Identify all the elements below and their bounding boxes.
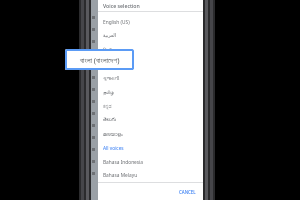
button[interactable]: English (US) <box>98 15 203 29</box>
staticText: العربية <box>103 33 117 39</box>
button[interactable]: ಕನ್ನಡ <box>98 99 203 113</box>
staticText: All voices <box>103 145 124 152</box>
staticText: ಕನ್ನಡ <box>103 104 112 109</box>
button[interactable]: All voices <box>98 141 203 155</box>
staticText: CANCEL <box>179 189 196 195</box>
staticText: English (US) <box>103 19 130 26</box>
staticText: தமிழ் <box>103 90 114 95</box>
staticText: മലയാളം <box>103 132 123 137</box>
staticText: हिन्दी <box>103 47 113 54</box>
staticText: Bahasa Indonesia <box>103 159 144 166</box>
button[interactable]: தமிழ் <box>98 85 203 99</box>
staticText: ગુજરાતી <box>103 76 120 81</box>
button[interactable]: العربية <box>98 29 203 43</box>
button[interactable]: Bahasa Indonesia <box>98 155 203 169</box>
button[interactable]: Selected voice: বাংলা (বাংলাদেশ) <box>65 49 134 70</box>
button[interactable]: Bahasa Melayu <box>98 169 203 182</box>
staticText: తెలుగు <box>103 117 117 123</box>
button[interactable]: తెలుగు <box>98 113 203 127</box>
button[interactable]: ગુજરાતી <box>98 71 203 85</box>
button[interactable]: CANCEL <box>176 187 199 197</box>
staticText: Bahasa Melayu <box>103 172 138 179</box>
staticText: Voice selection <box>103 2 140 9</box>
staticText: বাংলা (বাংলাদেশ) <box>80 55 120 65</box>
button[interactable]: മലയാളം <box>98 127 203 141</box>
button[interactable]: हिन्दी <box>98 43 203 57</box>
